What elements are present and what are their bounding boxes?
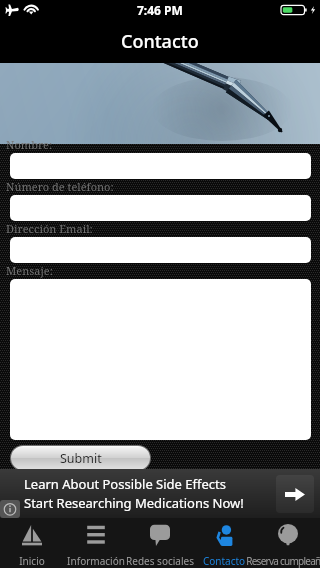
button[interactable]: [64, 518, 128, 568]
button[interactable]: Submit: [11, 446, 150, 470]
button[interactable]: [10, 195, 311, 221]
staticText: Redes sociales: [90, 554, 230, 568]
staticText: Número de teléfono:: [6, 179, 114, 194]
button[interactable]: [0, 518, 64, 568]
button[interactable]: [128, 518, 192, 568]
button[interactable]: [256, 518, 320, 568]
staticText: Inicio: [0, 554, 102, 568]
button[interactable]: Learn About Possible Side Effects: [0, 469, 320, 518]
staticText: Información: [26, 554, 166, 568]
staticText: Contacto: [154, 554, 294, 568]
staticText: Reserva cumpleaños: [218, 554, 320, 568]
staticText: Start Researching Medications Now!: [24, 494, 244, 512]
staticText: Contacto: [121, 29, 199, 54]
button[interactable]: Next ad: [276, 475, 314, 513]
staticText: 7:46 PM: [137, 2, 183, 18]
staticText: Dirección Email:: [6, 221, 93, 236]
staticText: Nombre:: [6, 137, 53, 152]
button[interactable]: [10, 237, 311, 263]
button[interactable]: [10, 153, 311, 179]
button[interactable]: [192, 518, 256, 568]
staticText: Mensaje:: [6, 263, 53, 278]
staticText: Learn About Possible Side Effects: [24, 475, 226, 493]
button[interactable]: [10, 279, 311, 440]
staticText: Submit: [60, 450, 102, 467]
